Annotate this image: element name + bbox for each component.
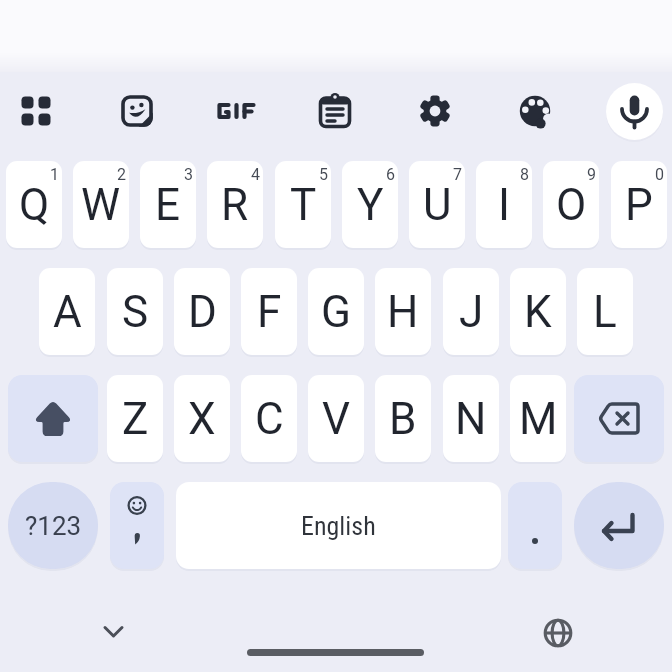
button[interactable]: Z — [107, 375, 163, 462]
staticText: English — [301, 511, 376, 541]
button[interactable]: ?123 — [8, 482, 98, 569]
button[interactable]: P — [611, 161, 667, 248]
button[interactable]: L — [577, 268, 633, 355]
staticText: P — [625, 179, 653, 231]
button[interactable]: X — [174, 375, 230, 462]
button[interactable] — [307, 83, 363, 139]
button[interactable]: F — [241, 268, 297, 355]
button[interactable]: R — [207, 161, 263, 248]
button[interactable]: K — [510, 268, 566, 355]
button[interactable] — [534, 609, 582, 657]
button[interactable]: English — [176, 482, 501, 569]
staticText: H — [387, 286, 419, 338]
staticText: I — [498, 179, 510, 231]
staticText: W — [81, 179, 121, 231]
button[interactable]: E — [140, 161, 196, 248]
button[interactable]: C — [241, 375, 297, 462]
staticText: 7 — [453, 165, 462, 184]
button[interactable] — [8, 375, 98, 462]
staticText: B — [389, 393, 417, 445]
staticText: N — [455, 393, 487, 445]
staticText: 9 — [587, 165, 596, 184]
staticText: 8 — [520, 165, 529, 184]
button[interactable]: D — [174, 268, 230, 355]
button[interactable]: N — [443, 375, 499, 462]
button[interactable]: V — [308, 375, 364, 462]
button[interactable]: G — [308, 268, 364, 355]
button[interactable]: O — [543, 161, 599, 248]
staticText: D — [188, 286, 217, 338]
staticText: F — [257, 286, 282, 338]
button[interactable] — [109, 83, 165, 139]
button[interactable] — [407, 83, 463, 139]
staticText: Y — [357, 179, 384, 231]
staticText: U — [423, 179, 452, 231]
staticText: Q — [19, 179, 50, 231]
staticText: 4 — [251, 165, 260, 184]
staticText: V — [322, 393, 351, 445]
staticText: G — [321, 286, 351, 338]
button[interactable]: B — [375, 375, 431, 462]
staticText: S — [122, 286, 149, 338]
staticText: L — [593, 286, 617, 338]
staticText: M — [519, 393, 558, 445]
button[interactable] — [110, 482, 164, 569]
staticText: 0 — [655, 165, 664, 184]
staticText: Z — [122, 393, 149, 445]
staticText: K — [524, 286, 552, 338]
button[interactable]: T — [275, 161, 331, 248]
button[interactable] — [574, 375, 664, 462]
staticText: X — [188, 393, 216, 445]
button[interactable]: M — [510, 375, 566, 462]
staticText: 3 — [184, 165, 193, 184]
staticText: ?123 — [25, 511, 82, 541]
staticText: 5 — [319, 165, 328, 184]
staticText: E — [155, 179, 181, 231]
button[interactable] — [93, 611, 134, 652]
button[interactable] — [574, 482, 664, 569]
button[interactable] — [508, 482, 562, 569]
button[interactable]: I — [476, 161, 532, 248]
button[interactable] — [208, 83, 264, 139]
button[interactable]: Y — [342, 161, 398, 248]
button[interactable]: U — [409, 161, 465, 248]
button[interactable]: S — [107, 268, 163, 355]
staticText: 1 — [50, 165, 59, 184]
button[interactable] — [8, 83, 64, 139]
staticText: C — [255, 393, 284, 445]
staticText: R — [221, 179, 249, 231]
button[interactable]: A — [39, 268, 95, 355]
button[interactable]: H — [375, 268, 431, 355]
button[interactable]: Q — [6, 161, 62, 248]
button[interactable] — [606, 83, 663, 140]
staticText: J — [459, 286, 484, 338]
staticText: A — [53, 286, 82, 338]
staticText: T — [290, 179, 317, 231]
button[interactable] — [507, 83, 563, 139]
button[interactable]: J — [443, 268, 499, 355]
staticText: O — [556, 179, 587, 231]
staticText: 6 — [386, 165, 395, 184]
staticText: 2 — [117, 165, 126, 184]
button[interactable]: W — [73, 161, 129, 248]
